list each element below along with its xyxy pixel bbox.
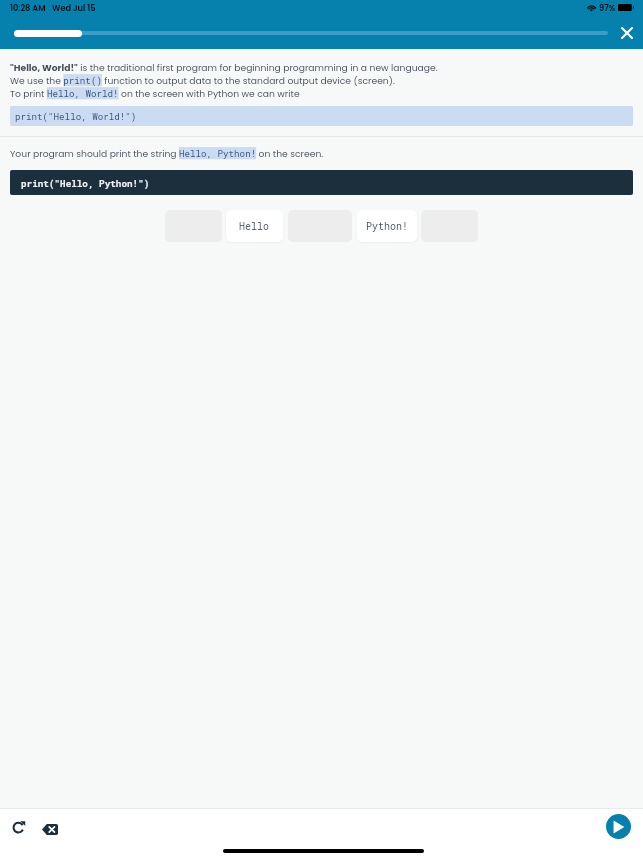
button[interactable]: Delete <box>37 816 63 842</box>
button[interactable]: Reset <box>8 816 30 838</box>
button[interactable]: Close lesson <box>616 22 638 44</box>
staticText: Hello <box>239 220 270 233</box>
button[interactable]: Run code <box>606 814 631 839</box>
button[interactable]: Hello <box>226 210 283 242</box>
staticText: Python! <box>366 220 409 233</box>
staticText: print("Hello, Python!") <box>21 177 150 189</box>
staticText: "Hello, World!" is the traditional first… <box>10 61 438 74</box>
staticText: To print Hello, World! on the screen wit… <box>10 87 300 100</box>
button[interactable]: Python! <box>357 210 417 242</box>
staticText: We use the print() function to output da… <box>10 74 395 87</box>
staticText: 10:28 AM <box>10 2 46 13</box>
staticText: Your program should print the string Hel… <box>10 147 324 160</box>
staticText: Wed Jul 15 <box>52 2 96 13</box>
staticText: print("Hello, World!") <box>15 110 137 122</box>
staticText: 97% <box>599 2 616 13</box>
